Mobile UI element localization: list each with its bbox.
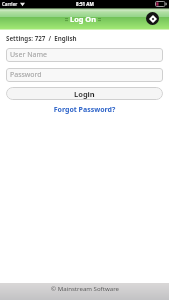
button[interactable]: Login xyxy=(6,87,163,100)
button[interactable]: Settings xyxy=(146,12,159,25)
staticText: Carrier xyxy=(2,1,18,7)
staticText: Settings: 727 / English xyxy=(6,34,77,42)
staticText: Password xyxy=(10,70,42,80)
button[interactable]: Forgot Password? xyxy=(0,105,169,115)
staticText: 8:51 AM xyxy=(76,1,94,7)
staticText: Log On xyxy=(70,14,96,24)
button[interactable]: User Name xyxy=(6,48,163,62)
staticText: Login xyxy=(74,89,95,99)
staticText: © Mainstream Software xyxy=(51,284,119,292)
button[interactable]: Password xyxy=(6,68,163,82)
staticText: User Name xyxy=(10,50,47,60)
